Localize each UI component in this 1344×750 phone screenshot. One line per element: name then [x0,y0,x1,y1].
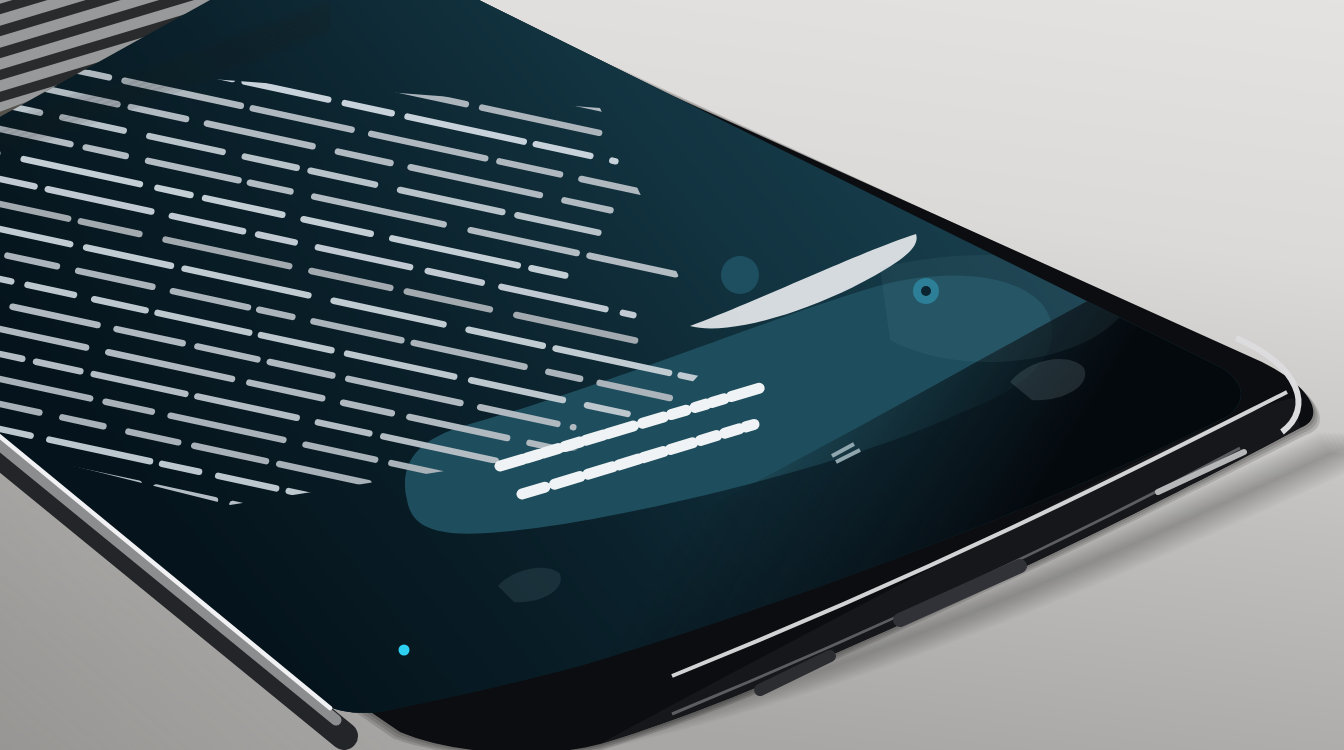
other: Smartphone showing a chat screen [0,0,1344,750]
